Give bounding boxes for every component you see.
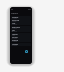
staticText: Podcast [12, 33, 18, 35]
staticText: Morning [12, 16, 19, 18]
button[interactable]: Ambient [11, 43, 31, 46]
button[interactable]: Running [11, 39, 31, 42]
staticText: 16 songs [12, 28, 17, 29]
staticText: Deep Work [12, 26, 20, 28]
staticText: 12 songs [12, 18, 17, 19]
button[interactable]: Top Hits [11, 36, 31, 39]
staticText: Top Hits [12, 36, 18, 38]
button[interactable]: Podcast [11, 33, 31, 36]
button[interactable]: Deep Work [11, 26, 31, 29]
staticText: Ambient [12, 43, 19, 45]
staticText: Jazz [12, 29, 15, 31]
button[interactable]: Chill [11, 22, 31, 25]
staticText: Running [12, 39, 19, 41]
staticText: Library [11, 12, 19, 15]
staticText: Focus Mix [12, 19, 20, 21]
staticText: 8 songs [12, 21, 17, 22]
button[interactable]: Focus Mix [11, 19, 31, 22]
button[interactable]: Jazz [11, 29, 31, 32]
button[interactable]: Add [25, 50, 28, 53]
button[interactable]: Morning [11, 16, 31, 19]
staticText: 30 songs [12, 31, 17, 32]
staticText: 18 songs [12, 41, 17, 42]
staticText: Chill [12, 22, 16, 24]
